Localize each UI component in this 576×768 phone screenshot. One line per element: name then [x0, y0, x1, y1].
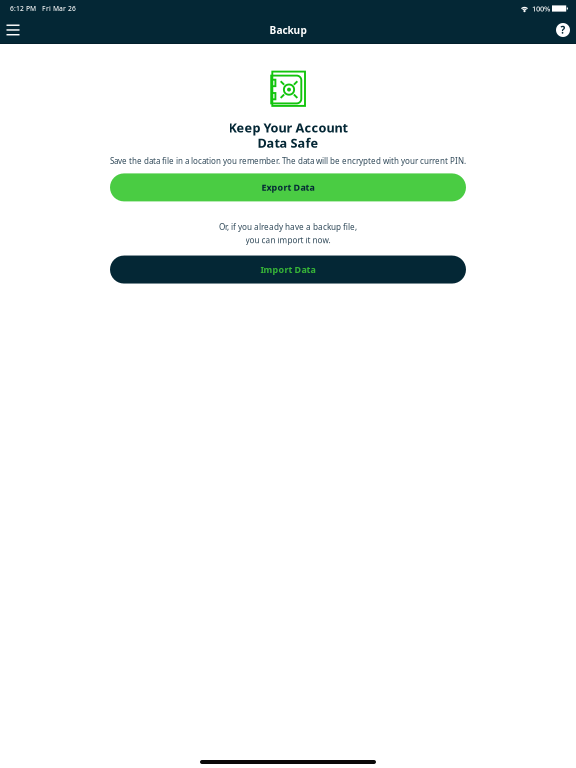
- button[interactable]: Export Data: [110, 173, 466, 201]
- staticText: ?: [560, 23, 565, 37]
- staticText: Backup: [269, 23, 306, 37]
- staticText: Data Safe: [257, 134, 318, 152]
- staticText: Or, if you already have a backup file,: [219, 221, 357, 232]
- staticText: Export Data: [261, 181, 314, 193]
- button[interactable]: Help: [552, 19, 574, 41]
- button[interactable]: Import Data: [110, 256, 466, 284]
- button[interactable]: Menu: [1, 18, 25, 42]
- staticText: Import Data: [260, 263, 315, 276]
- staticText: Save the data file in a location you rem…: [110, 155, 466, 166]
- staticText: you can import it now.: [245, 234, 330, 246]
- staticText: Keep Your Account: [228, 119, 347, 136]
- staticText: 6:12 PM Fri Mar 26: [10, 4, 76, 13]
- staticText: 100%: [532, 3, 550, 14]
